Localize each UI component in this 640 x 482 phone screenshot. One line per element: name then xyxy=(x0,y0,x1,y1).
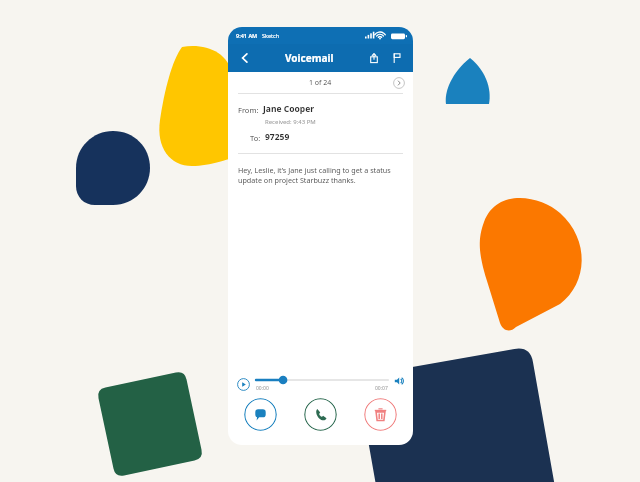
button[interactable]: Speaker xyxy=(393,375,405,387)
button[interactable]: Share xyxy=(366,50,382,66)
staticText: 97259 xyxy=(265,131,290,143)
staticText: 1 of 24 xyxy=(309,78,332,88)
button[interactable]: Next message xyxy=(392,76,406,90)
staticText: Received: 9:43 PM xyxy=(265,118,316,126)
button[interactable]: Message xyxy=(244,398,277,431)
button[interactable]: Back xyxy=(236,49,254,67)
button[interactable]: Delete xyxy=(364,398,397,431)
button[interactable]: Flag xyxy=(389,50,405,66)
staticText: Voicemail xyxy=(285,51,334,65)
staticText: 9:41 AM xyxy=(236,32,258,39)
button[interactable]: Call back xyxy=(304,398,337,431)
staticText: To: xyxy=(250,133,261,143)
staticText: Sketch xyxy=(262,32,280,39)
button[interactable]: Play xyxy=(236,377,250,391)
staticText: 00:07 xyxy=(375,385,388,392)
staticText: From: xyxy=(238,105,259,115)
staticText: Hey, Leslie, it’s Jane just calling to g… xyxy=(238,165,399,185)
staticText: 00:00 xyxy=(256,385,269,392)
staticText: Jane Cooper xyxy=(263,103,315,115)
